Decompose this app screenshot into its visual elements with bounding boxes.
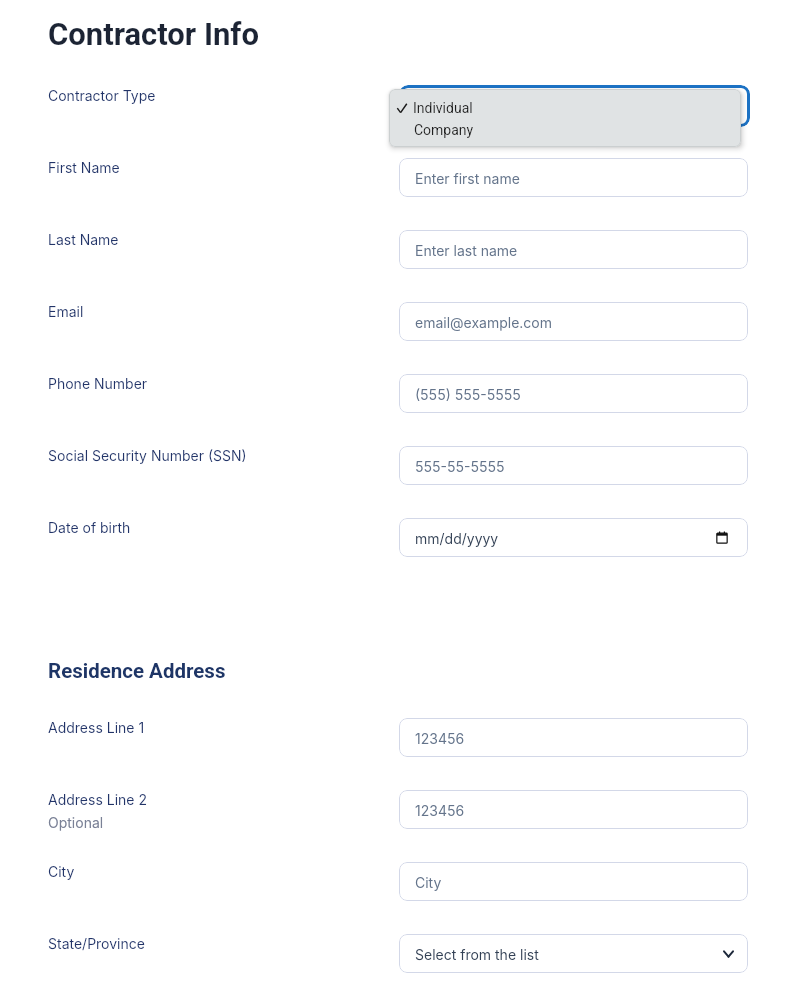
button[interactable]: 123456 (399, 718, 748, 757)
staticText: Individual (413, 100, 473, 116)
button[interactable]: Enter last name (399, 230, 748, 269)
other: Expand list (723, 948, 734, 960)
button[interactable]: Individual (389, 97, 741, 119)
staticText: City (48, 863, 75, 880)
button[interactable]: First Name (48, 159, 120, 176)
staticText: First Name (48, 159, 120, 176)
staticText: Date of birth (48, 519, 131, 536)
staticText: Select from the list (415, 946, 539, 963)
button[interactable]: 555-55-5555 (399, 446, 748, 485)
button[interactable]: (555) 555-5555 (399, 374, 748, 413)
staticText: Email (48, 303, 84, 320)
staticText: Enter last name (415, 242, 518, 259)
button[interactable]: Select from the list (399, 934, 748, 973)
button[interactable]: Address Line 2 (48, 791, 147, 831)
button[interactable]: Contractor Type (48, 87, 156, 104)
button[interactable]: Social Security Number (SSN) (48, 447, 247, 464)
staticText: Last Name (48, 231, 119, 248)
staticText: mm/dd/yyyy (415, 530, 499, 547)
button[interactable]: Phone Number (48, 375, 148, 392)
button[interactable]: Email (48, 303, 84, 320)
button[interactable]: Company (389, 119, 741, 141)
button[interactable]: email@example.com (399, 302, 748, 341)
other: Open calendar (716, 531, 728, 544)
button[interactable]: City (48, 863, 75, 880)
staticText: (555) 555-5555 (415, 386, 521, 403)
staticText: Enter first name (415, 170, 520, 187)
staticText: 555-55-5555 (415, 458, 505, 475)
button[interactable]: Enter first name (399, 158, 748, 197)
button[interactable]: 123456 (399, 790, 748, 829)
button[interactable]: State/Province (48, 935, 145, 952)
staticText: Social Security Number (SSN) (48, 447, 247, 464)
staticText: City (415, 874, 442, 891)
staticText: State/Province (48, 935, 145, 952)
staticText: Company (414, 122, 474, 138)
button[interactable]: Last Name (48, 231, 119, 248)
staticText: Residence Address (48, 659, 226, 683)
staticText: Contractor Type (48, 87, 156, 104)
button[interactable]: Date of birth (48, 519, 131, 536)
button[interactable]: City (399, 862, 748, 901)
button[interactable]: Contractor type select (399, 85, 750, 127)
button[interactable]: mm/dd/yyyy (399, 518, 748, 557)
staticText: email@example.com (415, 314, 553, 331)
staticText: 123456 (415, 802, 465, 819)
staticText: Optional (48, 814, 104, 831)
staticText: Phone Number (48, 375, 148, 392)
staticText: Address Line 2 (48, 791, 147, 808)
button[interactable]: Address Line 1 (48, 719, 145, 736)
staticText: Address Line 1 (48, 719, 145, 736)
staticText: Contractor Info (48, 16, 259, 52)
staticText: 123456 (415, 730, 465, 747)
